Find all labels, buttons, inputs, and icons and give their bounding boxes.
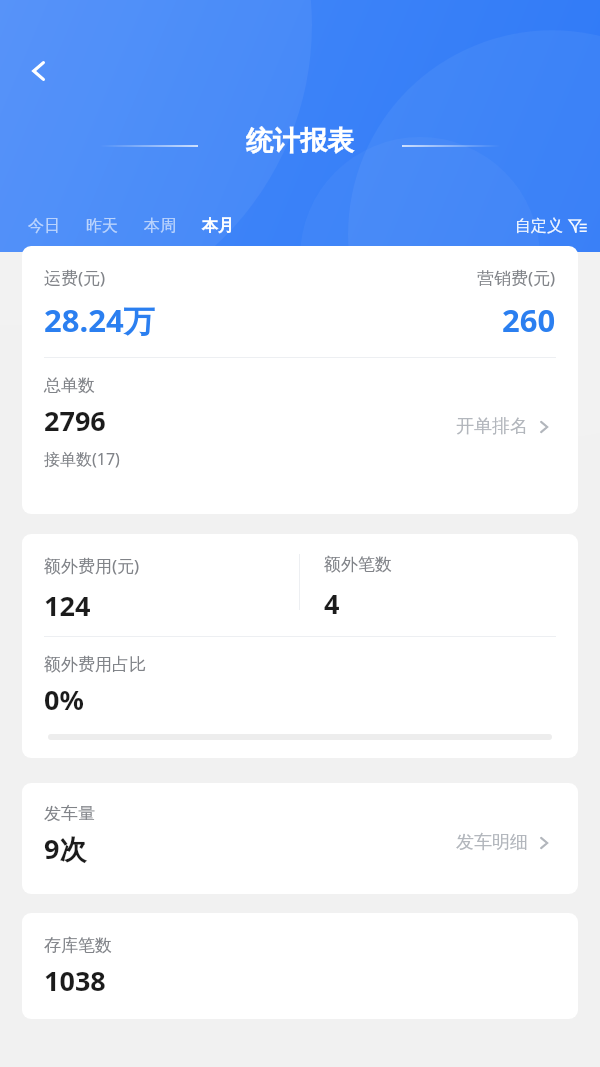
staticText: 发车量 [44,803,95,824]
staticText: 4 [324,585,340,622]
staticText: 开单排名 [456,415,528,438]
staticText: 昨天 [86,216,118,236]
staticText: 今日 [28,216,60,236]
staticText: 存库笔数 [44,935,112,956]
staticText: 营销费(元) [477,266,556,289]
button[interactable]: 开单排名 [452,409,556,444]
staticText: 本周 [144,216,176,236]
staticText: 2796 [44,402,106,439]
button[interactable]: 今日 [26,210,62,242]
staticText: 9次 [44,830,87,867]
button[interactable]: 本月 [200,210,236,242]
button[interactable]: 昨天 [84,210,120,242]
staticText: 28.24万 [44,299,155,341]
staticText: 124 [44,587,91,624]
staticText: 总单数 [44,375,95,396]
button[interactable]: 发车明细 [452,825,556,860]
button[interactable]: 本周 [142,210,178,242]
staticText: 额外费用(元) [44,554,140,577]
staticText: 1038 [44,962,106,999]
staticText: 0% [44,681,84,718]
staticText: 260 [502,299,556,341]
staticText: 运费(元) [44,266,106,289]
staticText: 统计报表 [0,124,600,158]
staticText: 发车明细 [456,831,528,854]
staticText: 本月 [202,216,234,236]
staticText: 自定义 [515,216,563,236]
staticText: 接单数(17) [44,448,120,470]
staticText: 额外笔数 [324,554,392,575]
staticText: 额外费用占比 [44,654,146,675]
button[interactable]: Back [14,46,64,96]
button[interactable]: 自定义 [509,212,594,240]
